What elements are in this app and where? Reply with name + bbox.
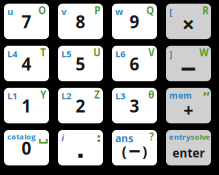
staticText: 6 [129,52,139,75]
staticText: 3 [129,94,139,117]
staticText: ? [149,130,154,143]
staticText: mem [169,89,192,101]
staticText: O [38,4,46,17]
button[interactable]: ans [112,130,157,165]
staticText: 1 [21,94,31,117]
staticText: × [182,9,195,39]
button[interactable]: entry [166,130,211,165]
staticText: enter [172,145,204,161]
staticText: Y [40,88,46,101]
staticText: catalog [7,131,35,142]
staticText: R [202,4,208,17]
button[interactable]: w [112,4,157,39]
staticText: solve [190,131,210,142]
staticText: L3 [115,89,125,102]
button[interactable]: v [58,4,103,39]
staticText: w [115,5,123,18]
button[interactable]: ] [166,46,211,81]
button[interactable]: L1 [4,88,49,123]
staticText: 0 [21,136,31,160]
staticText: Q [146,4,154,17]
staticText: i [61,131,64,144]
button[interactable]: L4 [4,46,49,81]
button[interactable]: u [4,4,49,39]
staticText: 2 [75,94,85,117]
staticText: L1 [7,89,17,102]
button[interactable]: mem [166,88,211,123]
button[interactable]: L3 [112,88,157,123]
staticText: T [40,46,46,59]
staticText: u [7,5,13,18]
staticText: 9 [129,10,139,33]
button[interactable]: i [58,130,103,165]
staticText: 5 [75,52,85,75]
staticText: L5 [61,47,71,60]
staticText: U [93,46,100,59]
staticText: Z [94,88,100,101]
button[interactable]: L2 [58,88,103,123]
staticText: ) [142,141,147,161]
staticText: 4 [21,52,31,75]
staticText: L4 [7,47,17,60]
staticText: P [94,4,100,17]
button[interactable]: catalog [4,130,49,165]
staticText: ␣ [38,127,48,144]
staticText: W [199,46,208,59]
button[interactable]: L6 [112,46,157,81]
staticText: [ [169,5,172,18]
staticText: ( [122,141,127,161]
staticText: ] [169,47,172,60]
staticText: ans [115,131,133,145]
staticText: v [61,5,66,18]
staticText: “ [203,86,210,106]
staticText: 8 [75,10,85,33]
staticText: − [128,136,140,165]
staticText: + [183,98,193,122]
staticText: V [148,46,154,59]
staticText: θ [148,88,154,101]
staticText: L2 [61,89,71,102]
button[interactable]: [ [166,4,211,39]
staticText: 7 [21,10,31,33]
staticText: entry [169,131,190,142]
staticText: L6 [115,47,125,60]
button[interactable]: L5 [58,46,103,81]
staticText: − [180,49,196,87]
